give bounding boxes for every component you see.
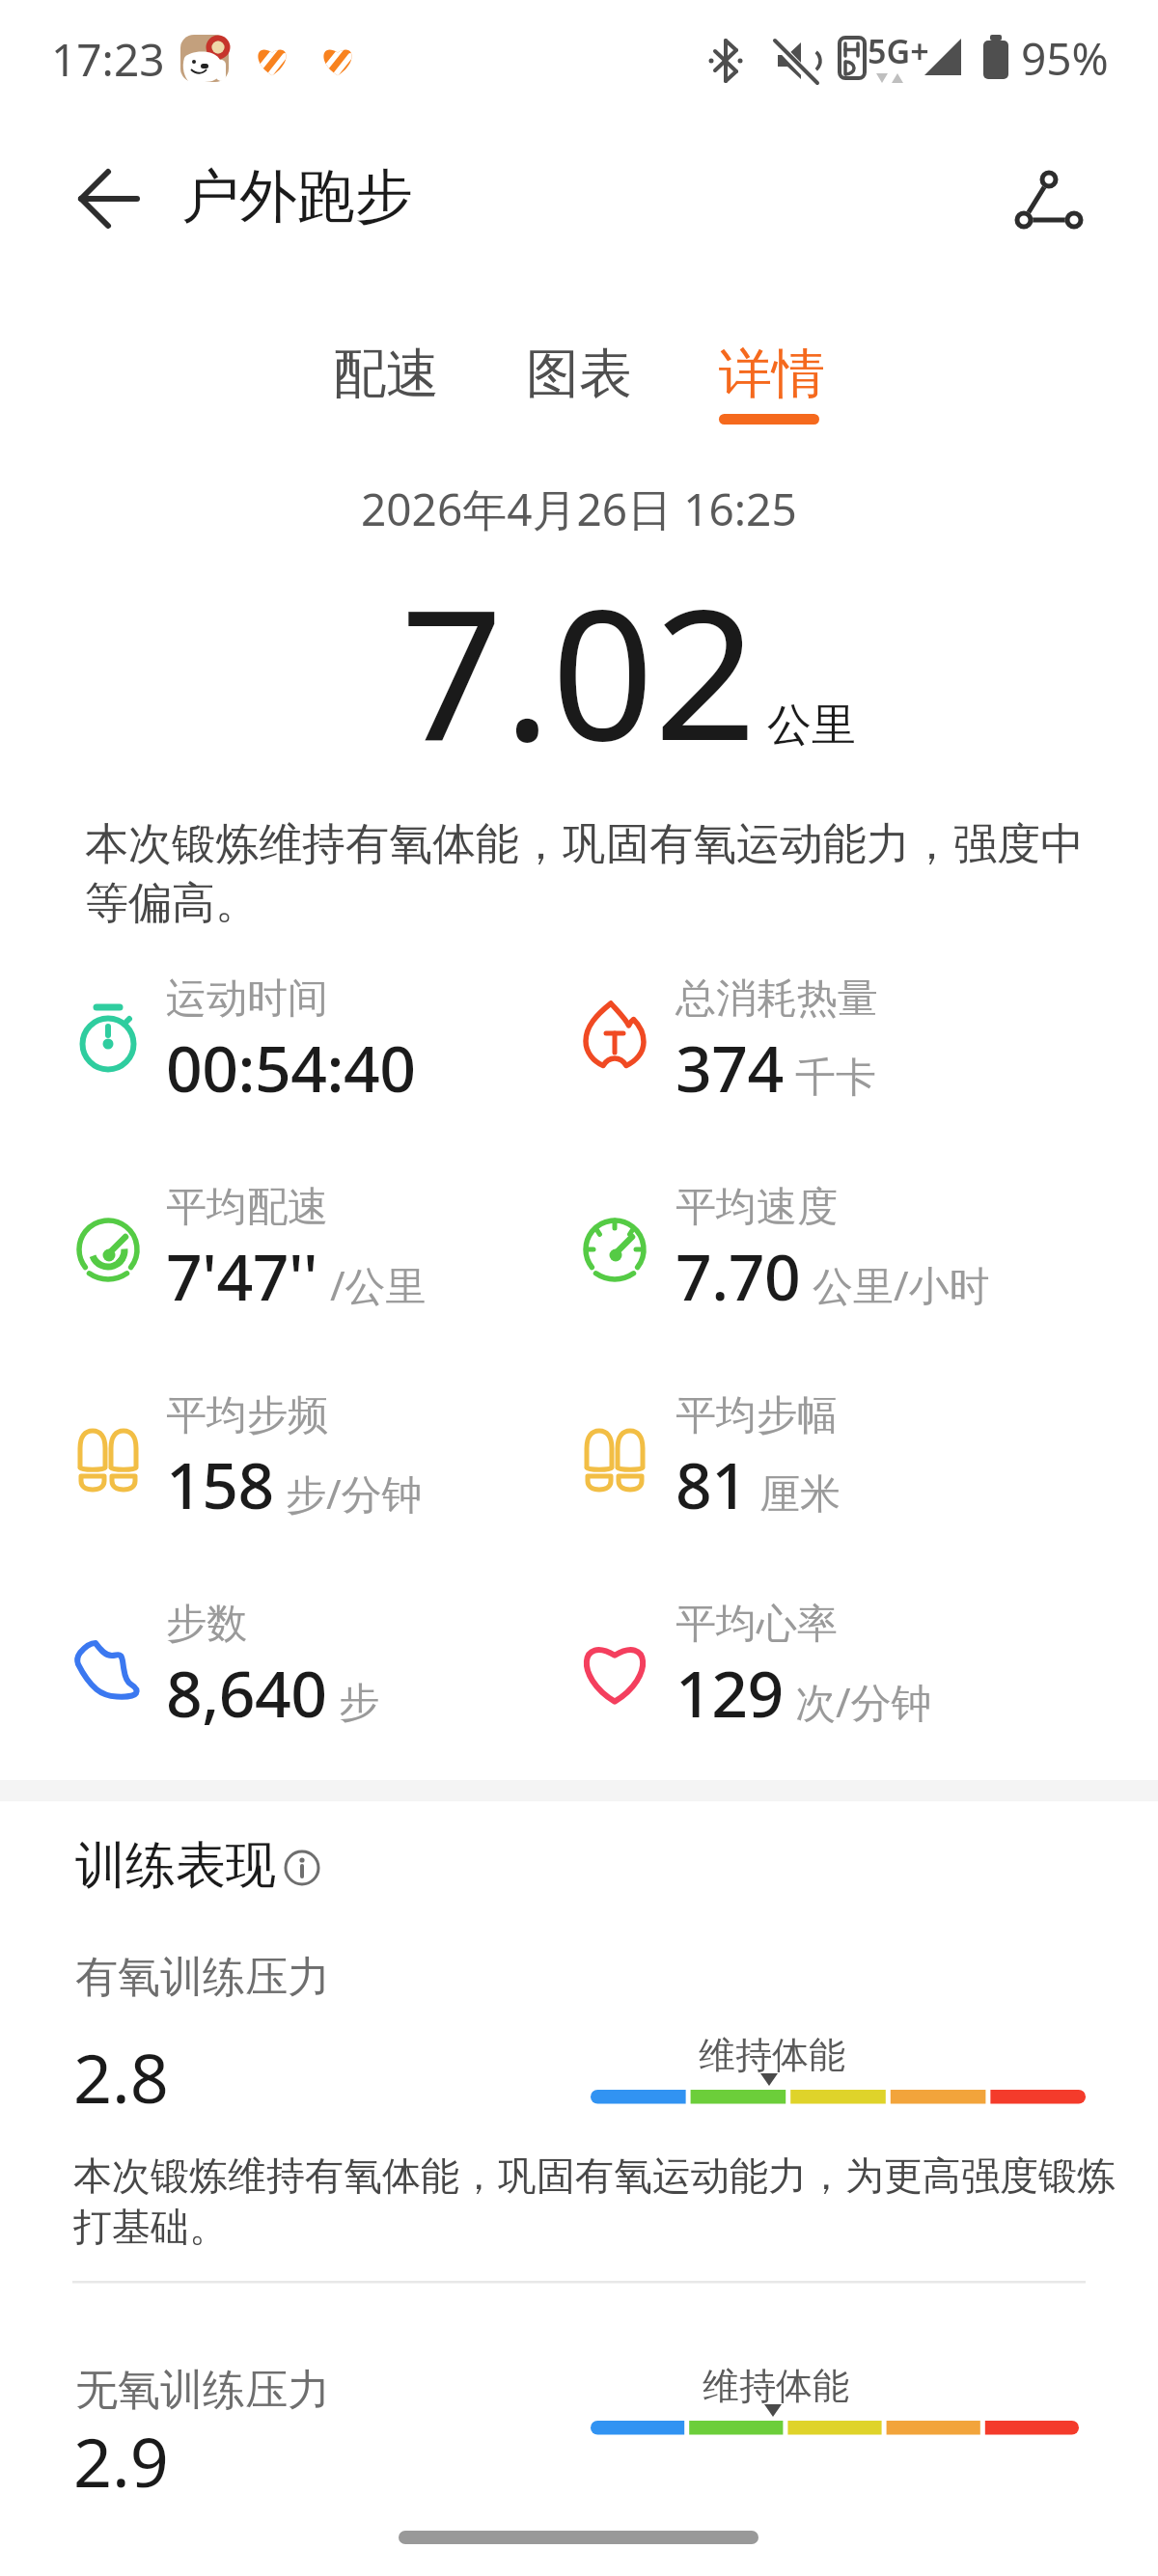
staticText: 2.9: [73, 2415, 169, 2507]
staticText: 平均步幅: [675, 1390, 838, 1441]
staticText: 95%: [1021, 28, 1109, 89]
staticText: 步数: [166, 1599, 247, 1650]
staticText: 详情: [719, 341, 825, 407]
staticText: 公里: [767, 698, 856, 754]
staticText: 步/分钟: [286, 1466, 423, 1521]
staticText: 7.02: [400, 548, 758, 792]
staticText: 平均配速: [166, 1182, 328, 1233]
staticText: 配速: [333, 341, 439, 407]
staticText: 有氧训练压力: [75, 1951, 330, 2004]
staticText: 无氧训练压力: [75, 2364, 330, 2417]
button[interactable]: [278, 1841, 331, 1894]
staticText: 训练表现: [75, 1834, 276, 1898]
staticText: 00:54:40: [166, 1024, 416, 1110]
staticText: 374: [675, 1024, 784, 1110]
staticText: 维持体能: [703, 2363, 849, 2409]
staticText: 2.8: [73, 2031, 169, 2123]
button[interactable]: [511, 318, 647, 434]
staticText: /公里: [330, 1257, 427, 1312]
staticText: 81: [675, 1440, 748, 1527]
staticText: 千卡: [795, 1053, 876, 1104]
staticText: 运动时间: [166, 973, 328, 1025]
staticText: 7'47'': [166, 1232, 318, 1319]
staticText: 平均心率: [675, 1599, 838, 1650]
staticText: 图表: [526, 341, 632, 407]
staticText: 步: [339, 1678, 379, 1729]
staticText: 17:23: [51, 29, 165, 90]
staticText: 本次锻炼维持有氧体能，巩固有氧运动能力，强度中 等偏高。: [85, 817, 1084, 930]
staticText: 平均步频: [166, 1390, 328, 1441]
button[interactable]: [994, 154, 1100, 260]
staticText: 维持体能: [699, 2032, 845, 2078]
staticText: 公里/小时: [813, 1257, 990, 1312]
staticText: 129: [675, 1649, 784, 1736]
staticText: 厘米: [759, 1469, 841, 1521]
staticText: 次/分钟: [795, 1674, 932, 1729]
button[interactable]: [704, 318, 840, 434]
staticText: 2026年4月26日 16:25: [361, 479, 797, 539]
staticText: 5G+: [868, 29, 929, 73]
staticText: 户外跑步: [181, 160, 413, 233]
staticText: 总消耗热量: [675, 973, 878, 1025]
staticText: 8,640: [166, 1649, 327, 1736]
staticText: 158: [166, 1440, 274, 1527]
staticText: 平均速度: [675, 1182, 838, 1233]
staticText: 本次锻炼维持有氧体能，巩固有氧运动能力，为更高强度锻炼 打基础。: [73, 2151, 1116, 2252]
staticText: 7.70: [675, 1232, 801, 1319]
button[interactable]: [58, 145, 164, 251]
button[interactable]: [318, 318, 454, 434]
